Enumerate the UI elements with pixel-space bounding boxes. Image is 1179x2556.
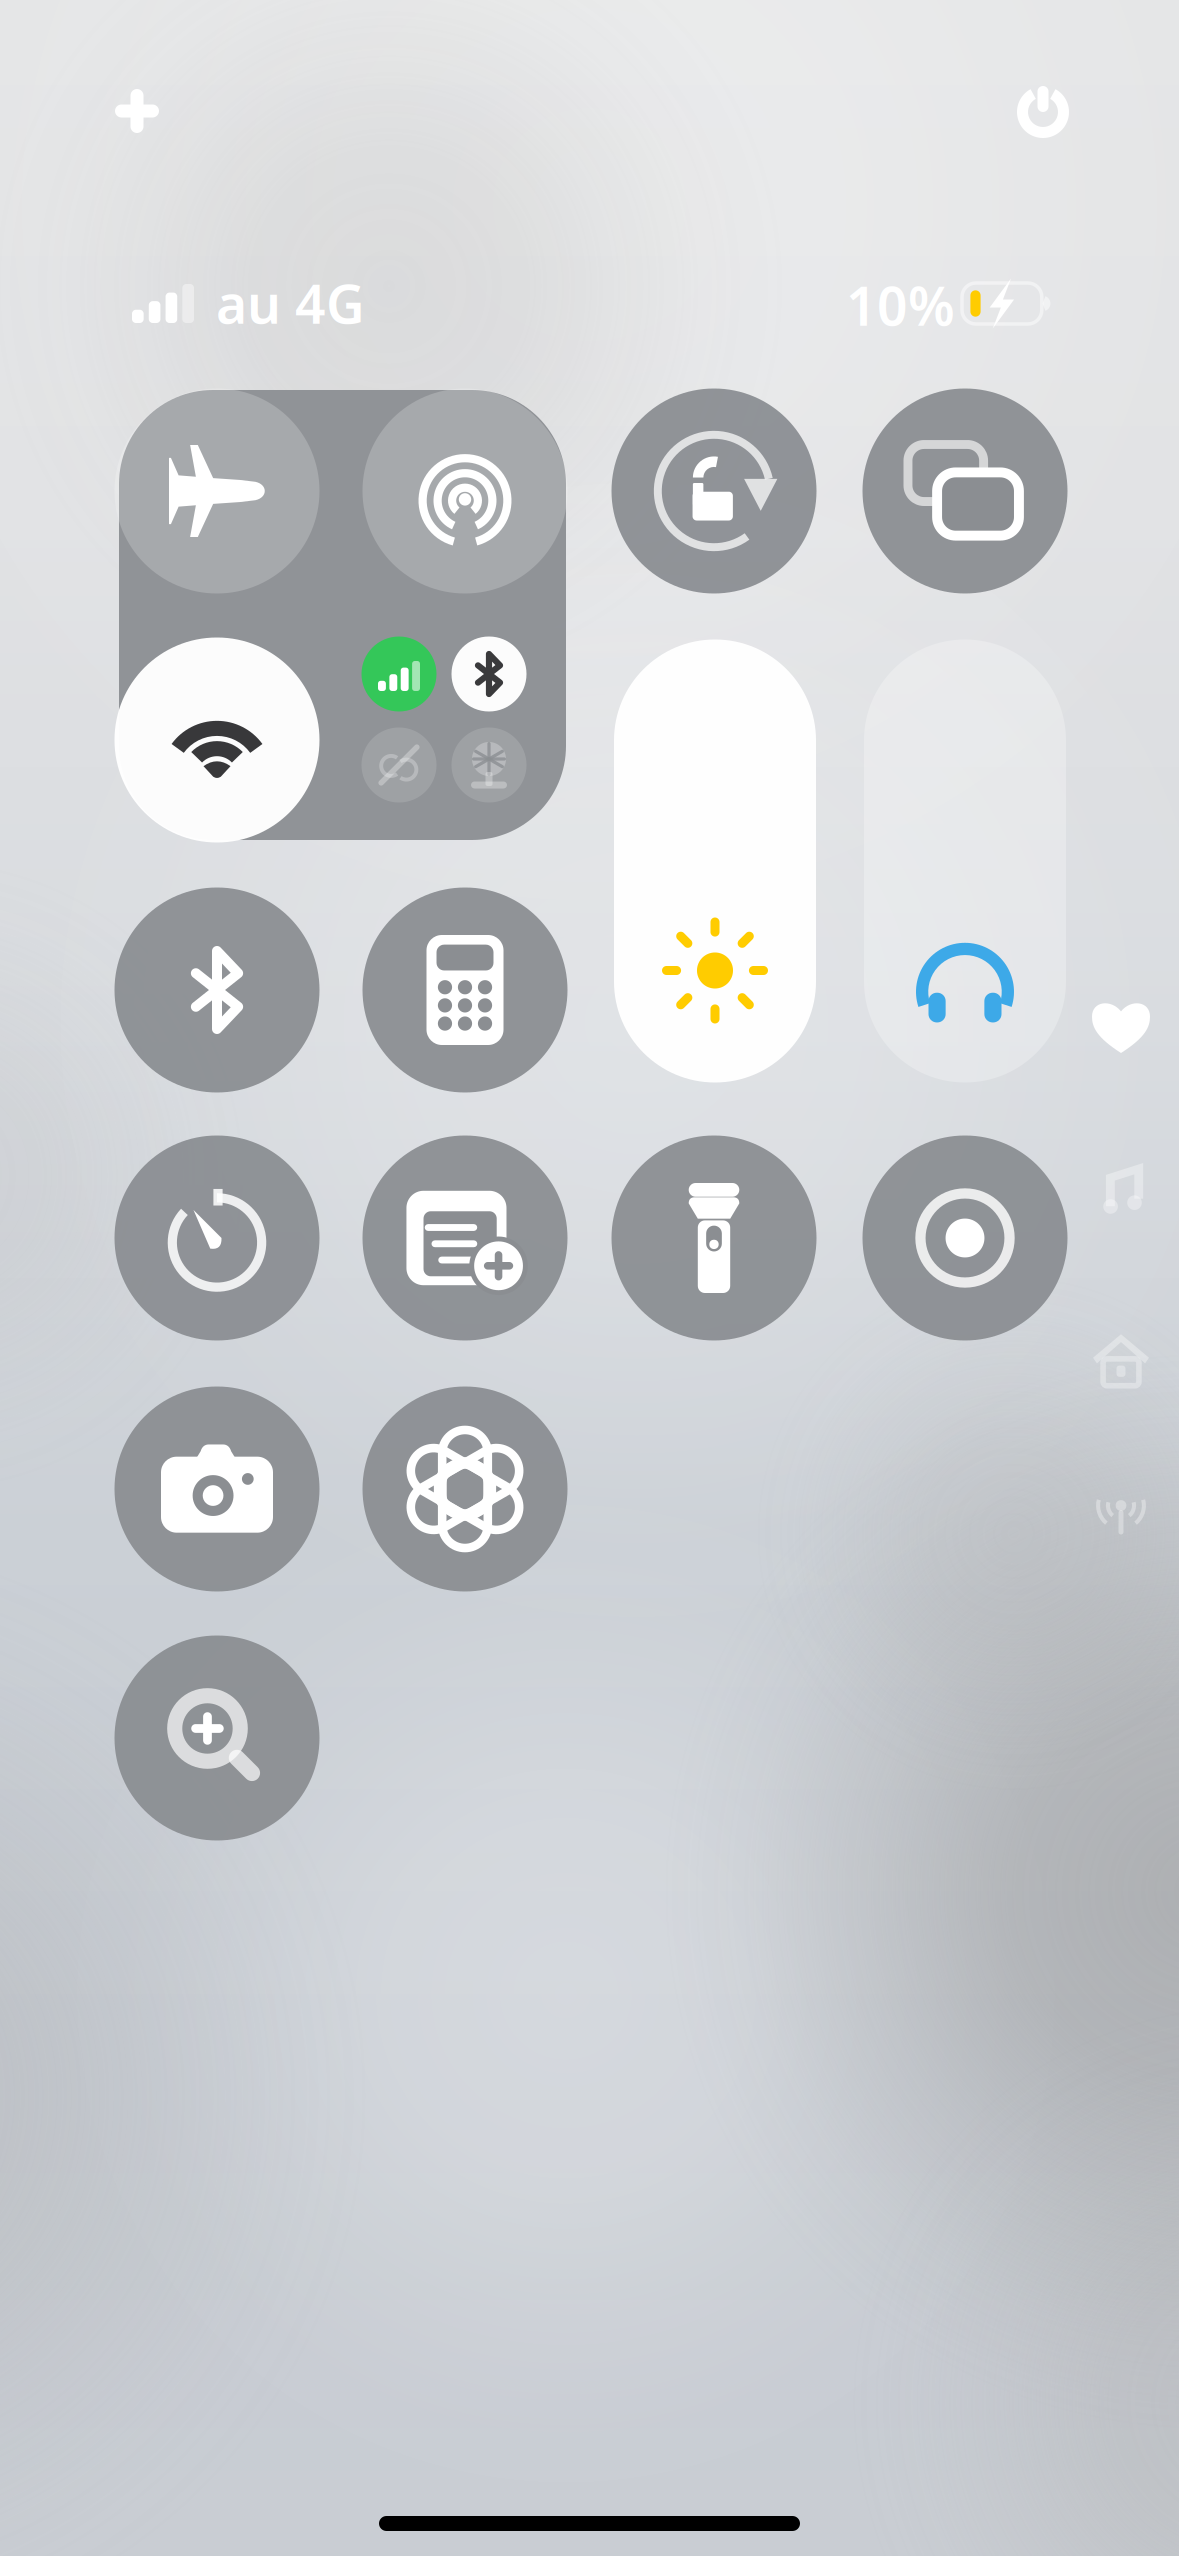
staticText: 10% [846, 270, 955, 340]
button[interactable]: Home [1073, 1312, 1169, 1408]
button[interactable]: New Note [362, 1135, 567, 1340]
button[interactable]: Bluetooth [451, 636, 526, 711]
button[interactable]: Screen Mirroring [862, 388, 1067, 593]
button[interactable]: Magnifier [114, 1635, 319, 1840]
button[interactable]: Rotation Lock [611, 388, 816, 593]
button[interactable]: Screen Recording [862, 1135, 1067, 1340]
button[interactable]: Flashlight [611, 1135, 816, 1340]
button[interactable]: Brightness [614, 639, 816, 1082]
button[interactable]: AirDrop Off [361, 727, 436, 802]
button[interactable]: Cellular Data [361, 636, 436, 711]
button[interactable]: Connectivity [1073, 1461, 1169, 1557]
button[interactable]: Wi-Fi [114, 637, 319, 842]
button[interactable]: Volume [864, 639, 1066, 1082]
button[interactable]: ChatGPT [362, 1386, 567, 1591]
button[interactable]: AirDrop [362, 388, 567, 593]
button[interactable]: Airplane Mode [114, 388, 319, 593]
button[interactable]: Add a Control [82, 56, 192, 166]
button[interactable]: Satellite [451, 727, 526, 802]
button[interactable]: Health [1073, 979, 1169, 1075]
button[interactable]: Calculator [362, 887, 567, 1092]
button[interactable]: Power Off [988, 57, 1098, 167]
button[interactable]: Timer [114, 1135, 319, 1340]
button[interactable]: Bluetooth [114, 887, 319, 1092]
staticText: au 4G [216, 268, 365, 338]
button[interactable]: Now Playing [1073, 1142, 1169, 1238]
button[interactable]: Camera [114, 1386, 319, 1591]
